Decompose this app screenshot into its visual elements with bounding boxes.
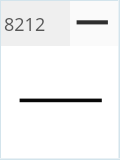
button[interactable]: Menu — [70, 1, 118, 46]
staticText: 8212 — [4, 12, 46, 37]
button[interactable]: Divider — [1, 46, 118, 158]
button[interactable]: 8212 — [1, 1, 70, 46]
